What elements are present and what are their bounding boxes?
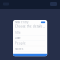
staticText: Choose the details you want to include h…: [15, 25, 45, 28]
button[interactable]: Back: [3, 2, 9, 5]
staticText: People: [15, 42, 26, 45]
button[interactable]: Continue: [13, 54, 47, 56]
staticText: New entry: [15, 20, 28, 24]
staticText: Date: [15, 36, 21, 40]
button[interactable]: Account: [50, 2, 57, 6]
staticText: Title: [15, 31, 21, 34]
staticText: Notes: [15, 47, 23, 51]
